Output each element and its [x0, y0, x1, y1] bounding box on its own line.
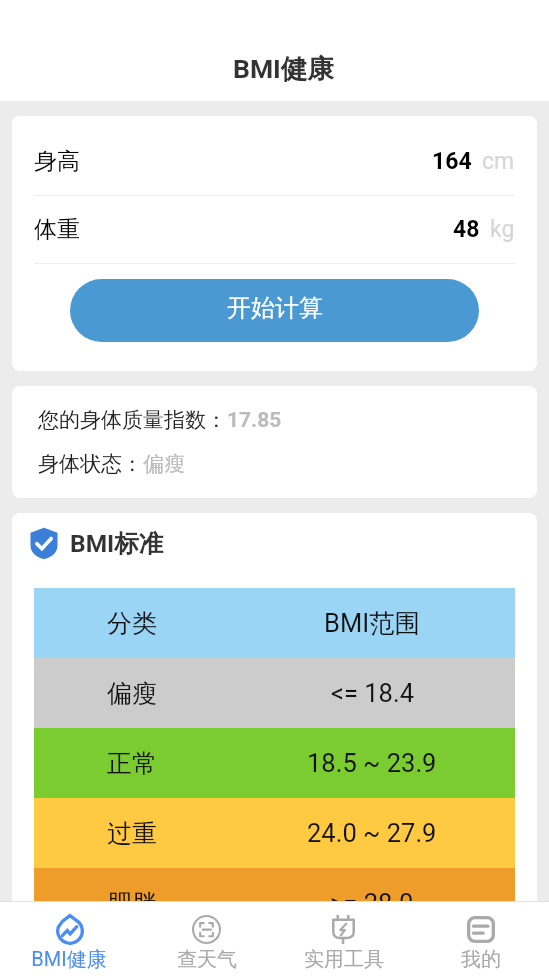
staticText: 17.85	[227, 408, 282, 433]
staticText: 身高	[34, 147, 80, 176]
button[interactable]: 实用工具	[275, 902, 412, 976]
staticText: 过重	[107, 818, 157, 849]
button[interactable]: 查天气	[138, 902, 275, 976]
staticText: 24.0 ~ 27.9	[307, 818, 437, 848]
staticText: cm	[482, 148, 515, 175]
staticText: 开始计算	[227, 293, 323, 323]
staticText: BMI健康	[31, 947, 107, 972]
staticText: BMI范围	[324, 607, 421, 639]
staticText: 查天气	[177, 947, 237, 972]
staticText: BMI健康	[233, 52, 334, 85]
button[interactable]: 我的	[412, 902, 549, 976]
staticText: 偏瘦	[143, 451, 185, 477]
staticText: 偏瘦	[107, 678, 157, 709]
staticText: BMI标准	[70, 528, 164, 559]
staticText: 实用工具	[304, 947, 384, 972]
staticText: 164	[432, 148, 472, 175]
staticText: 身体状态：	[38, 451, 143, 477]
staticText: 我的	[461, 947, 501, 972]
staticText: 肥胖	[107, 888, 157, 919]
staticText: 正常	[107, 748, 157, 779]
staticText: 18.5 ~ 23.9	[307, 748, 437, 778]
staticText: 分类	[107, 608, 157, 639]
staticText: >= 28.0	[330, 888, 414, 918]
staticText: 体重	[34, 215, 80, 244]
staticText: kg	[490, 216, 515, 243]
staticText: <= 18.4	[331, 678, 414, 708]
staticText: 您的身体质量指数：	[38, 407, 227, 433]
button[interactable]: BMI健康	[0, 902, 138, 976]
staticText: 48	[453, 216, 480, 243]
button[interactable]: 开始计算	[70, 279, 479, 342]
